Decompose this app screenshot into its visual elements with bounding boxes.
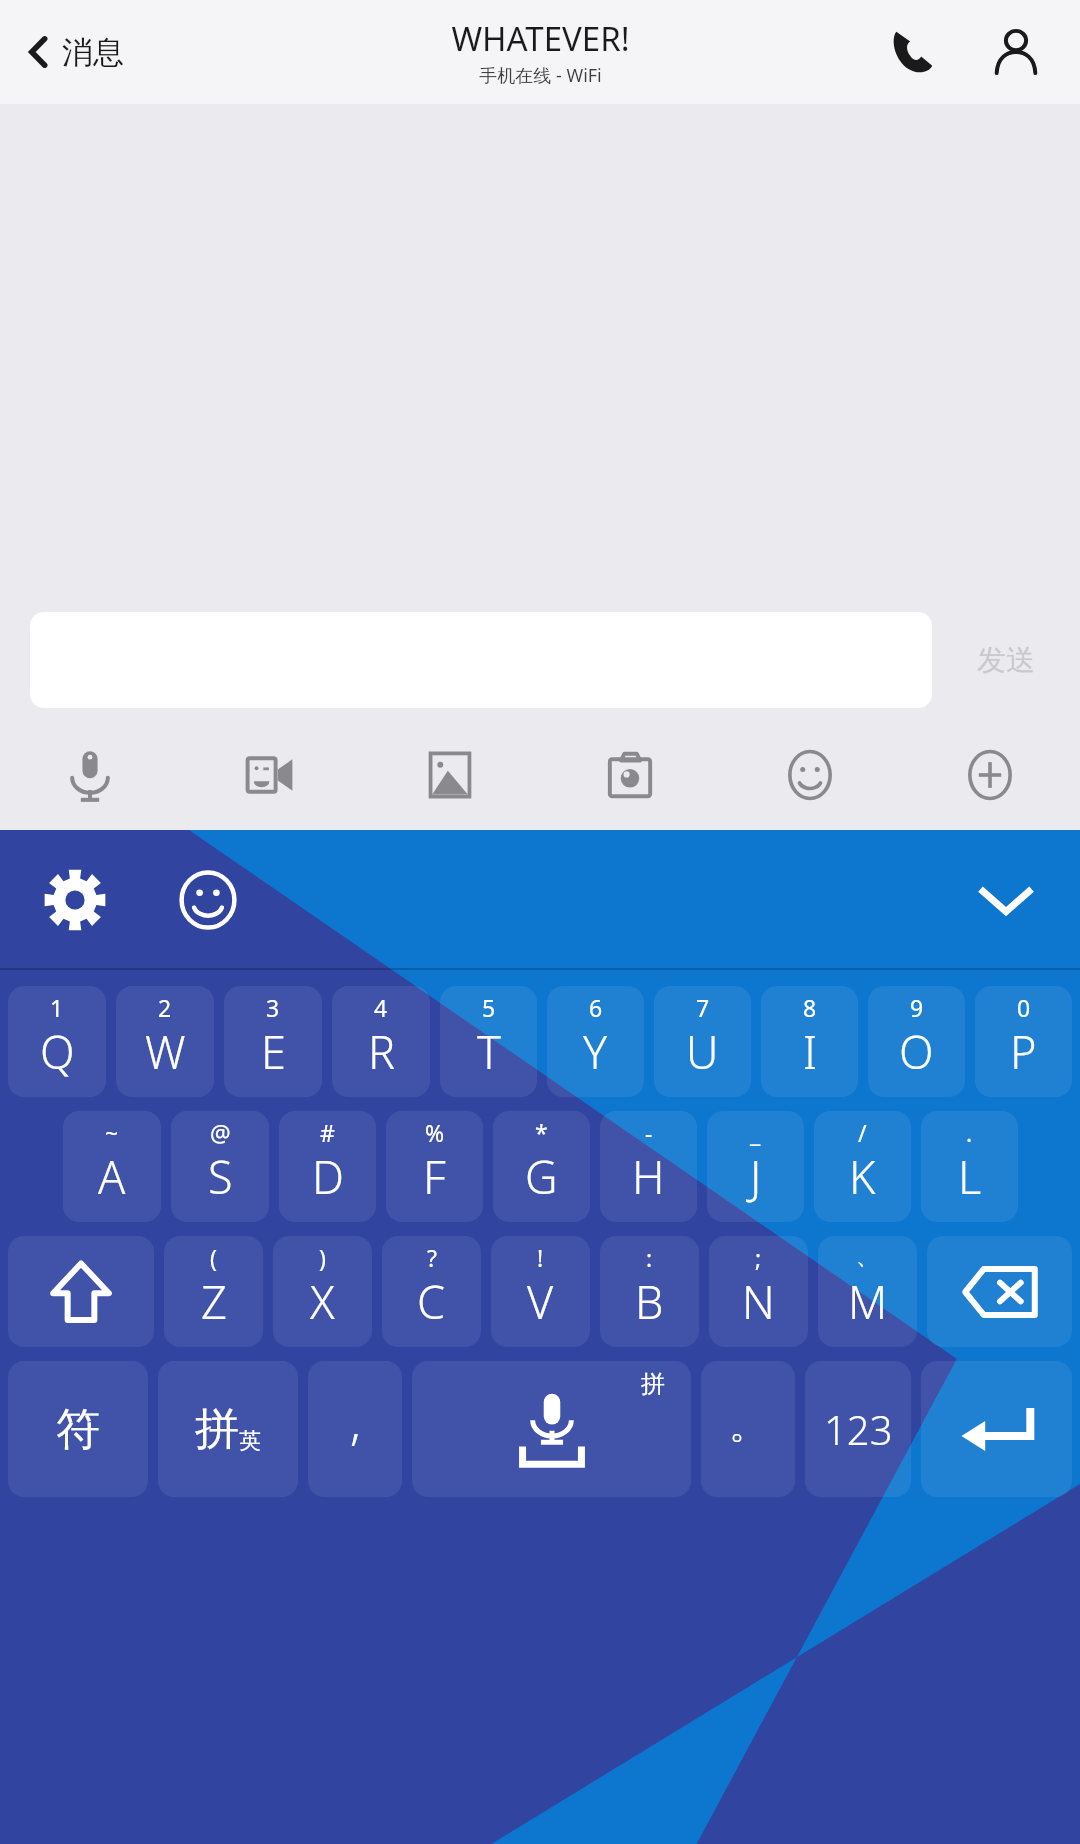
staticText: R	[368, 1021, 395, 1082]
button[interactable]: *	[493, 1111, 590, 1222]
staticText: X	[310, 1271, 335, 1332]
button[interactable]: 8	[761, 986, 858, 1097]
staticText: E	[261, 1021, 286, 1082]
button[interactable]: 发送	[932, 612, 1080, 708]
staticText: 123	[824, 1402, 893, 1456]
button[interactable]: #	[279, 1111, 376, 1222]
staticText: %	[425, 1117, 445, 1148]
staticText: C	[417, 1271, 446, 1332]
button[interactable]: ?	[382, 1236, 481, 1347]
button[interactable]: More	[900, 720, 1080, 830]
button[interactable]: Switch pinyin / English	[158, 1361, 298, 1497]
button[interactable]: Backspace	[927, 1236, 1072, 1347]
button[interactable]: 4	[332, 986, 430, 1097]
button[interactable]: 、	[818, 1236, 917, 1347]
button[interactable]: 2	[116, 986, 214, 1097]
button[interactable]: Comma	[308, 1361, 402, 1497]
button[interactable]: 消息	[18, 26, 132, 78]
button[interactable]: @	[171, 1111, 269, 1222]
staticText: /	[858, 1117, 867, 1148]
staticText: ?	[427, 1242, 437, 1273]
button[interactable]: _	[707, 1111, 804, 1222]
button[interactable]: Video	[180, 720, 360, 830]
staticText: Y	[583, 1021, 608, 1082]
button[interactable]: :	[600, 1236, 699, 1347]
button[interactable]: Numbers	[805, 1361, 911, 1497]
button[interactable]: /	[814, 1111, 911, 1222]
staticText: *	[535, 1117, 548, 1148]
staticText: 0	[1017, 992, 1031, 1023]
staticText: S	[208, 1146, 233, 1207]
button[interactable]: .	[921, 1111, 1018, 1222]
button[interactable]: -	[600, 1111, 697, 1222]
button[interactable]: %	[386, 1111, 483, 1222]
staticText: P	[1010, 1021, 1037, 1082]
button[interactable]: Space / voice input	[412, 1361, 691, 1497]
staticText: 6	[589, 992, 603, 1023]
staticText: N	[742, 1271, 775, 1332]
staticText: 英	[239, 1427, 261, 1455]
staticText: ,	[350, 1389, 361, 1454]
staticText: D	[312, 1146, 344, 1207]
staticText: 发送	[977, 642, 1035, 679]
staticText: (	[210, 1242, 217, 1273]
staticText: J	[750, 1146, 762, 1207]
staticText: U	[686, 1021, 719, 1082]
button[interactable]: ;	[709, 1236, 808, 1347]
staticText: 、	[856, 1242, 879, 1271]
button[interactable]: Sticker	[720, 720, 900, 830]
staticText: W	[145, 1021, 186, 1082]
staticText: G	[525, 1146, 558, 1207]
button[interactable]: 3	[224, 986, 322, 1097]
staticText: ;	[755, 1242, 762, 1273]
staticText: B	[635, 1271, 664, 1332]
button[interactable]: Contact profile	[978, 14, 1054, 90]
staticText: 拼	[641, 1369, 665, 1399]
button[interactable]: Voice message	[0, 720, 180, 830]
button[interactable]: Shift	[8, 1236, 154, 1347]
staticText: M	[848, 1271, 888, 1332]
staticText: H	[632, 1146, 665, 1207]
button[interactable]: )	[273, 1236, 372, 1347]
button[interactable]: Period	[701, 1361, 795, 1497]
staticText: 拼	[195, 1402, 239, 1457]
staticText: ~	[105, 1117, 119, 1148]
button[interactable]: 1	[8, 986, 106, 1097]
staticText: WHATEVER!	[451, 16, 630, 61]
staticText: I	[803, 1021, 817, 1082]
button[interactable]: 6	[547, 986, 644, 1097]
staticText: 2	[158, 992, 172, 1023]
staticText: 8	[803, 992, 817, 1023]
staticText: L	[958, 1146, 982, 1207]
staticText: K	[849, 1146, 876, 1207]
button[interactable]: Camera	[540, 720, 720, 830]
button[interactable]: Call	[874, 14, 950, 90]
button[interactable]: Emoji	[165, 857, 251, 943]
staticText: )	[319, 1242, 326, 1273]
staticText: .	[966, 1117, 973, 1148]
button[interactable]: Enter	[921, 1361, 1072, 1497]
button[interactable]: 7	[654, 986, 751, 1097]
button[interactable]: ~	[63, 1111, 161, 1222]
button[interactable]: Gallery	[360, 720, 540, 830]
staticText: T	[477, 1021, 501, 1082]
staticText: !	[537, 1242, 544, 1273]
staticText: 消息	[62, 33, 124, 72]
button[interactable]: (	[164, 1236, 263, 1347]
button[interactable]: Symbols	[8, 1361, 148, 1497]
staticText: 7	[696, 992, 710, 1023]
button[interactable]: 0	[975, 986, 1072, 1097]
staticText: 5	[482, 992, 496, 1023]
button[interactable]: 9	[868, 986, 965, 1097]
staticText: A	[98, 1146, 126, 1207]
staticText: 4	[374, 992, 388, 1023]
button[interactable]: Keyboard settings	[30, 855, 120, 945]
button[interactable]: 5	[440, 986, 537, 1097]
staticText: Q	[40, 1021, 75, 1082]
staticText: _	[750, 1117, 761, 1148]
button[interactable]: !	[491, 1236, 590, 1347]
staticText: 。	[729, 1401, 767, 1449]
staticText: O	[899, 1021, 934, 1082]
button[interactable]: Hide keyboard	[958, 852, 1054, 948]
